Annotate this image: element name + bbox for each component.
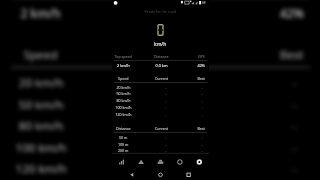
button[interactable]: History bbox=[169, 154, 188, 168]
button[interactable]: Back bbox=[124, 168, 138, 180]
button[interactable]: Trips bbox=[131, 154, 150, 168]
button[interactable]: Vehicle bbox=[150, 154, 169, 168]
button[interactable]: Statistics bbox=[112, 154, 131, 168]
button[interactable]: Settings bbox=[188, 154, 207, 168]
button[interactable]: Home bbox=[154, 168, 168, 180]
button[interactable]: Recent apps bbox=[181, 168, 195, 180]
